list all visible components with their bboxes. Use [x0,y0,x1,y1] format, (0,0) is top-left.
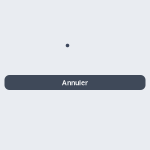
button[interactable]: Annuler [4,75,145,90]
staticText: Annuler [62,78,88,87]
